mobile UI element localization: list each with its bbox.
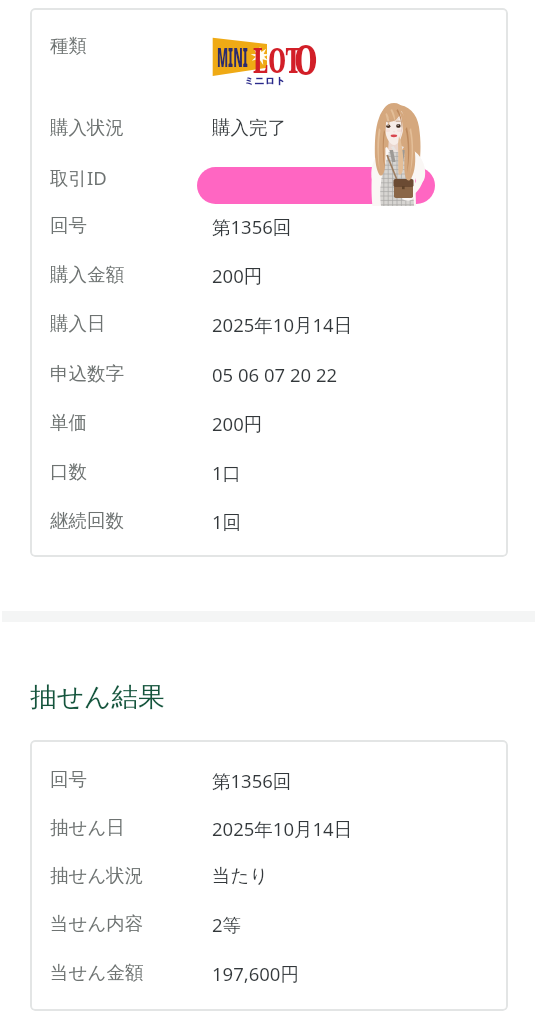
staticText: 当たり — [212, 864, 269, 887]
button[interactable] — [31, 852, 507, 900]
staticText: LOT — [253, 35, 301, 82]
staticText: 単価 — [50, 411, 87, 434]
button[interactable] — [31, 350, 507, 398]
staticText: 05 06 07 20 22 — [212, 362, 338, 387]
button[interactable] — [31, 300, 507, 348]
staticText: 2025年10月14日 — [212, 816, 353, 841]
button[interactable] — [31, 22, 507, 70]
button[interactable] — [31, 497, 507, 545]
staticText: 2025年10月14日 — [212, 312, 353, 337]
other: User avatar — [362, 100, 436, 206]
button[interactable] — [31, 804, 507, 852]
staticText: 継続回数 — [50, 509, 124, 532]
staticText: 購入日 — [50, 312, 106, 335]
staticText: MINI — [217, 39, 248, 74]
staticText: 2等 — [212, 912, 242, 937]
other: MINI LOTO — [210, 32, 322, 90]
staticText: 197,600円 — [212, 961, 299, 986]
staticText: 取引ID — [50, 165, 107, 190]
button[interactable] — [31, 153, 507, 201]
button[interactable] — [31, 202, 507, 250]
staticText: 200円 — [212, 411, 263, 436]
staticText: 1口 — [212, 460, 242, 485]
staticText: 回号 — [50, 214, 87, 237]
staticText: 抽せん日 — [50, 816, 125, 839]
staticText: 第1356回 — [212, 768, 292, 793]
staticText: O — [294, 30, 318, 86]
button[interactable] — [31, 104, 507, 152]
staticText: 購入状況 — [50, 116, 124, 139]
staticText: 当せん内容 — [50, 912, 144, 935]
staticText: 種類 — [50, 34, 87, 57]
staticText: 第1356回 — [212, 214, 292, 239]
staticText: 1回 — [212, 509, 242, 534]
button[interactable] — [31, 448, 507, 496]
button[interactable] — [31, 251, 507, 299]
staticText: 当せん金額 — [50, 961, 144, 984]
staticText: 口数 — [50, 460, 87, 483]
staticText: 200円 — [212, 263, 263, 288]
staticText: ミニロト — [244, 75, 286, 86]
button[interactable] — [31, 900, 507, 948]
staticText: 申込数字 — [50, 362, 124, 385]
staticText: 購入完了 — [212, 116, 286, 139]
staticText: 抽せん結果 — [30, 680, 165, 714]
staticText: 回号 — [50, 768, 87, 791]
button[interactable] — [31, 399, 507, 447]
staticText: 購入金額 — [50, 263, 124, 286]
button[interactable] — [31, 949, 507, 997]
button[interactable] — [31, 756, 507, 804]
staticText: 抽せん状況 — [50, 864, 144, 887]
